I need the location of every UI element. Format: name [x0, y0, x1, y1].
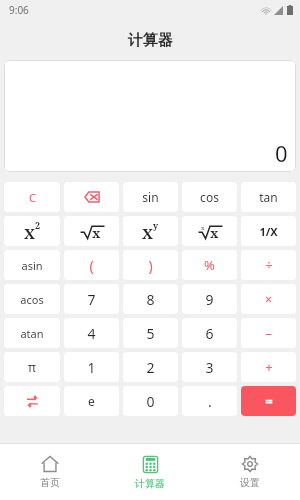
staticText: 9	[205, 290, 214, 309]
button[interactable]: Home	[0, 444, 100, 500]
button[interactable]: e	[64, 386, 119, 416]
staticText: 首页	[40, 476, 60, 489]
button[interactable]: cos	[182, 182, 237, 212]
button[interactable]: asin	[4, 250, 60, 280]
staticText: %	[204, 256, 215, 274]
button[interactable]: 4	[64, 318, 119, 348]
staticText: ÷	[265, 256, 273, 274]
button[interactable]: π	[4, 352, 60, 382]
staticText: (	[89, 256, 94, 275]
button[interactable]: 1/X	[241, 216, 296, 246]
staticText: 7	[87, 290, 96, 309]
button[interactable]: C	[4, 182, 60, 212]
button[interactable]: .	[182, 386, 237, 416]
button[interactable]: 6	[182, 318, 237, 348]
button[interactable]: 8	[123, 284, 178, 314]
button[interactable]: acos	[4, 284, 60, 314]
staticText: y	[153, 219, 159, 231]
button[interactable]: =	[241, 386, 296, 416]
staticText: 8	[146, 290, 155, 309]
other: Home	[41, 455, 59, 473]
staticText: .	[208, 392, 212, 411]
staticText: e	[88, 393, 95, 409]
other: Calculator	[142, 455, 159, 474]
staticText: 3	[205, 358, 214, 377]
staticText: asin	[21, 258, 43, 273]
button[interactable]: %	[182, 250, 237, 280]
staticText: 4	[87, 324, 96, 343]
other: Backspace	[84, 191, 100, 203]
button[interactable]: 7	[64, 284, 119, 314]
button[interactable]: X	[4, 216, 60, 246]
button[interactable]: ÷	[241, 250, 296, 280]
staticText: )	[148, 256, 153, 275]
staticText: π	[28, 359, 36, 375]
staticText: +	[265, 358, 273, 376]
other: Settings	[241, 455, 259, 473]
button[interactable]: –	[241, 318, 296, 348]
staticText: 2	[146, 358, 155, 377]
button[interactable]: nth root	[182, 216, 237, 246]
staticText: 设置	[240, 476, 260, 489]
staticText: 1	[87, 358, 96, 377]
staticText: acos	[20, 292, 44, 307]
staticText: x	[92, 224, 101, 242]
staticText: 6	[205, 324, 214, 343]
staticText: X	[142, 223, 153, 243]
staticText: 计算器	[135, 477, 165, 490]
staticText: 0	[275, 138, 288, 168]
button[interactable]: X	[123, 216, 178, 246]
button[interactable]: square root	[64, 216, 119, 246]
staticText: sin	[142, 189, 159, 205]
staticText: 5	[146, 324, 155, 343]
staticText: 计算器	[128, 31, 173, 50]
button[interactable]: tan	[241, 182, 296, 212]
button[interactable]: 3	[182, 352, 237, 382]
staticText: ×	[265, 291, 272, 307]
button[interactable]: sin	[123, 182, 178, 212]
button[interactable]: ×	[241, 284, 296, 314]
staticText: tan	[259, 189, 278, 205]
button[interactable]: atan	[4, 318, 60, 348]
other: Swap	[26, 395, 39, 408]
staticText: =	[265, 392, 273, 410]
button[interactable]: Calculator	[100, 444, 200, 500]
staticText: atan	[20, 326, 44, 341]
staticText: x	[210, 224, 219, 242]
staticText: cos	[200, 189, 219, 205]
staticText: 9:06	[9, 3, 29, 17]
button[interactable]: (	[64, 250, 119, 280]
staticText: 1/X	[259, 224, 278, 239]
staticText: 0	[146, 392, 155, 411]
button[interactable]: 5	[123, 318, 178, 348]
button[interactable]: 9	[182, 284, 237, 314]
staticText: X	[24, 223, 35, 243]
button[interactable]: Swap	[4, 386, 60, 416]
button[interactable]: Backspace	[64, 182, 119, 212]
button[interactable]: 0	[123, 386, 178, 416]
button[interactable]: +	[241, 352, 296, 382]
button[interactable]: 2	[123, 352, 178, 382]
staticText: x	[201, 224, 205, 232]
staticText: 2	[35, 219, 41, 231]
button[interactable]: )	[123, 250, 178, 280]
staticText: –	[265, 324, 272, 342]
button[interactable]: 1	[64, 352, 119, 382]
staticText: C	[29, 190, 36, 205]
button[interactable]: Settings	[200, 444, 300, 500]
